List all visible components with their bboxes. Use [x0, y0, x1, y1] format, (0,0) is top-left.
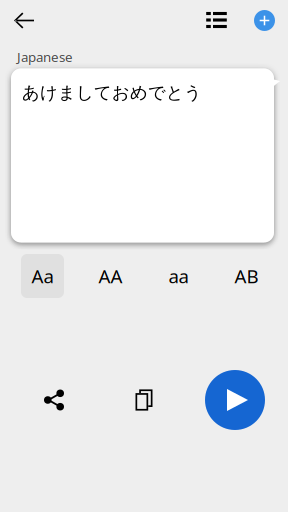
button[interactable]: aa: [157, 254, 200, 298]
staticText: Japanese: [17, 48, 73, 66]
button[interactable]: Copy: [120, 376, 168, 424]
button[interactable]: AB: [225, 254, 268, 298]
button[interactable]: Add: [244, 0, 285, 41]
staticText: AA: [98, 264, 122, 288]
staticText: AB: [234, 264, 258, 288]
button[interactable]: AA: [89, 254, 132, 298]
staticText: Aa: [31, 264, 53, 288]
button[interactable]: Aa: [21, 254, 64, 298]
button[interactable]: Play: [205, 370, 265, 430]
button[interactable]: Share: [30, 376, 78, 424]
staticText: あけましておめでとう: [22, 82, 202, 103]
button[interactable]: History: [196, 0, 237, 40]
button[interactable]: Back: [4, 0, 44, 40]
staticText: aa: [168, 264, 188, 288]
